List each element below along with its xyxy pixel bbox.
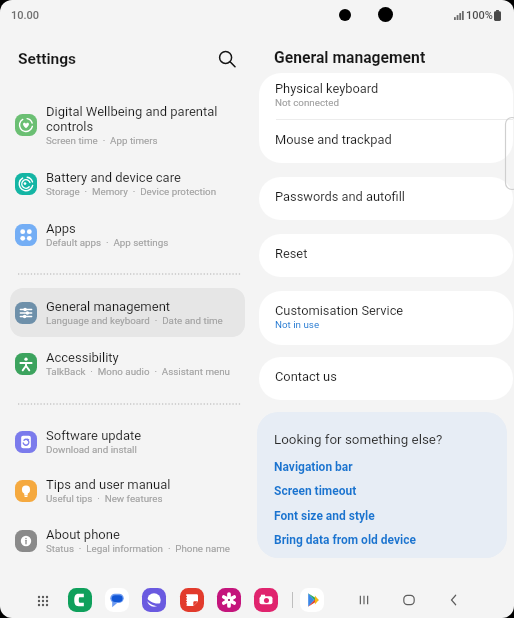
- staticText: Passwords and autofill: [275, 189, 405, 204]
- staticText: 10.00: [11, 9, 40, 22]
- staticText: Digital Wellbeing and parental controls: [46, 104, 218, 134]
- staticText: Language and keyboard · Date and time: [46, 315, 223, 326]
- staticText: Not in use: [275, 319, 320, 330]
- button[interactable]: Gallery: [217, 588, 241, 612]
- button[interactable]: Tips and user manual: [10, 471, 245, 510]
- button[interactable]: Messages: [105, 588, 129, 612]
- staticText: Apps: [46, 221, 76, 236]
- button[interactable]: Play Store: [300, 588, 324, 612]
- staticText: General management: [274, 48, 426, 66]
- button[interactable]: Bring data from old device: [274, 533, 417, 547]
- button[interactable]: Phone: [68, 588, 92, 612]
- staticText: About phone: [46, 527, 120, 542]
- staticText: TalkBack · Mono audio · Assistant menu: [46, 366, 230, 377]
- button[interactable]: Software update: [10, 422, 245, 461]
- staticText: Screen timeout: [274, 484, 357, 498]
- button[interactable]: Navigation bar: [274, 460, 353, 474]
- button[interactable]: Reset: [259, 234, 513, 277]
- staticText: Not connected: [275, 97, 339, 108]
- button[interactable]: Apps: [10, 215, 245, 254]
- staticText: Physical keyboard: [275, 81, 379, 96]
- staticText: Bring data from old device: [274, 533, 417, 547]
- staticText: Reset: [275, 246, 308, 261]
- staticText: Default apps · App settings: [46, 237, 169, 248]
- button[interactable]: Internet: [142, 588, 166, 612]
- button[interactable]: All apps: [31, 589, 54, 612]
- staticText: Mouse and trackpad: [275, 132, 392, 147]
- staticText: Font size and style: [274, 509, 375, 523]
- button[interactable]: Search: [213, 45, 241, 73]
- button[interactable]: Camera: [254, 588, 278, 612]
- staticText: Useful tips · New features: [46, 493, 163, 504]
- staticText: Software update: [46, 428, 142, 443]
- staticText: Battery and device care: [46, 170, 181, 185]
- staticText: Navigation bar: [274, 460, 353, 474]
- staticText: General management: [46, 299, 171, 314]
- button[interactable]: Physical keyboard: [259, 73, 513, 119]
- button[interactable]: Font size and style: [274, 509, 375, 523]
- button[interactable]: Recents: [352, 588, 376, 612]
- button[interactable]: Mouse and trackpad: [259, 119, 513, 163]
- button[interactable]: About phone: [10, 521, 245, 560]
- staticText: Looking for something else?: [274, 432, 443, 448]
- button[interactable]: Passwords and autofill: [259, 177, 513, 220]
- staticText: Screen time · App timers: [46, 135, 158, 146]
- staticText: 100%: [466, 9, 493, 22]
- staticText: Customisation Service: [275, 303, 404, 318]
- button[interactable]: Back: [442, 588, 466, 612]
- button[interactable]: Accessibility: [10, 344, 245, 383]
- button[interactable]: Customisation Service: [259, 291, 513, 345]
- staticText: Storage · Memory · Device protection: [46, 186, 217, 197]
- button[interactable]: Digital Wellbeing and parental controls: [10, 101, 245, 148]
- staticText: Settings: [18, 50, 77, 68]
- button[interactable]: Screen timeout: [274, 484, 357, 498]
- staticText: Contact us: [275, 369, 337, 384]
- button[interactable]: Home: [397, 588, 421, 612]
- button[interactable]: Contact us: [259, 357, 513, 400]
- button[interactable]: Notes: [180, 588, 204, 612]
- staticText: Tips and user manual: [46, 477, 171, 492]
- staticText: Accessibility: [46, 350, 119, 365]
- staticText: Status · Legal information · Phone name: [46, 543, 231, 554]
- staticText: Download and install: [46, 444, 137, 455]
- button[interactable]: Battery and device care: [10, 164, 245, 203]
- button[interactable]: General management: [10, 288, 245, 337]
